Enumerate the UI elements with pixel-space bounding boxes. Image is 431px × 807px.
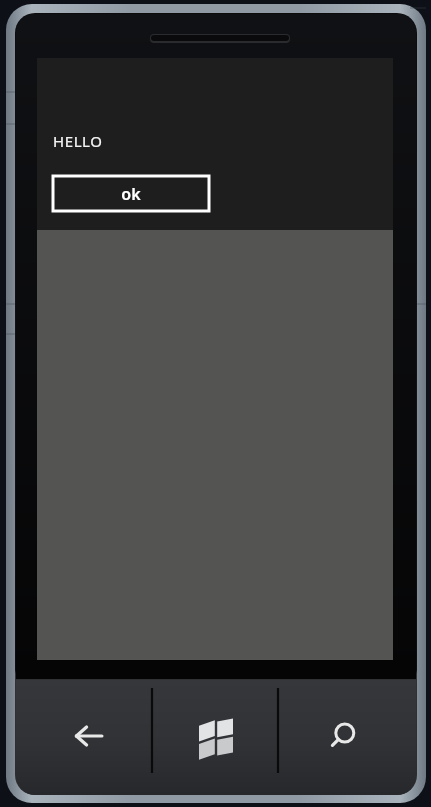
- button[interactable]: ok: [53, 176, 209, 211]
- staticText: HELLO: [53, 131, 103, 151]
- button[interactable]: Back: [35, 698, 143, 774]
- button[interactable]: Search: [289, 698, 397, 774]
- staticText: ok: [121, 183, 141, 205]
- button[interactable]: Start: [162, 698, 270, 774]
